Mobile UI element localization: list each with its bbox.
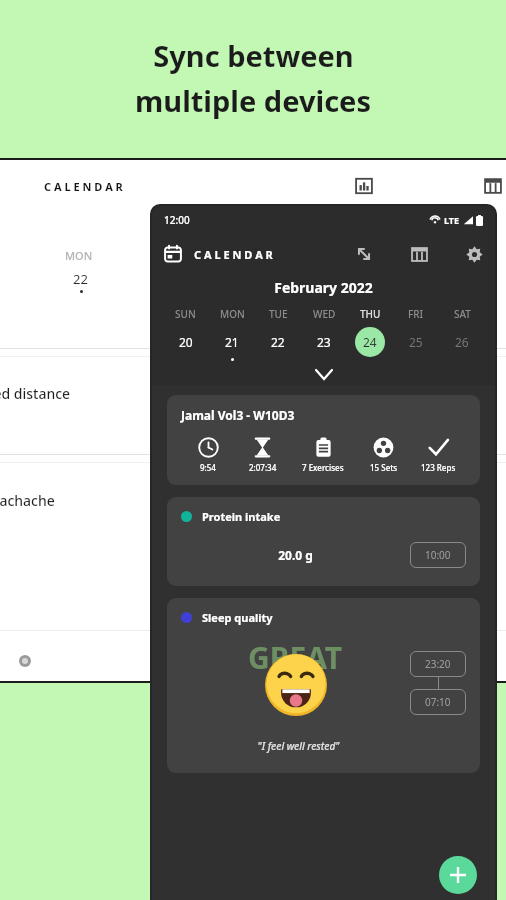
staticText: ...achache (0, 491, 55, 510)
staticText: 23 (317, 334, 331, 350)
button[interactable]: Statistics (355, 177, 373, 195)
staticText: SUN (175, 307, 196, 321)
staticText: 21 (225, 334, 239, 350)
staticText: 7 Exercises (302, 462, 344, 473)
button[interactable]: 123 Reps (411, 437, 466, 473)
staticText: 9:54 (200, 462, 216, 473)
button[interactable]: TUE (255, 307, 301, 363)
staticText: 20.0 g (181, 547, 410, 563)
button[interactable]: WED (301, 307, 347, 363)
staticText: MON (220, 307, 245, 321)
button[interactable]: THU (347, 307, 393, 363)
staticText: ...ed distance (0, 384, 71, 403)
staticText: THU (360, 307, 381, 321)
button[interactable]: 9:54 (181, 437, 235, 473)
staticText: February 2022 (152, 278, 495, 297)
staticText: 12:00 (164, 213, 190, 227)
staticText: 24 (363, 334, 377, 350)
staticText: 20 (179, 334, 193, 350)
button[interactable]: 2:07:34 (235, 437, 290, 473)
staticText: 26 (455, 334, 469, 350)
button[interactable]: SAT (439, 307, 485, 363)
staticText: SAT (454, 307, 471, 321)
staticText: C A L E N D A R (44, 179, 123, 194)
button[interactable]: Protein intake (167, 497, 480, 586)
button[interactable]: Calendar (164, 245, 182, 263)
staticText: 23:20 (425, 657, 451, 671)
button[interactable]: 7 Exercises (290, 437, 356, 473)
button[interactable]: Sleep quality (167, 598, 480, 773)
staticText: 22 (271, 334, 285, 350)
button[interactable]: Add entry (439, 856, 477, 894)
staticText: 10:00 (425, 548, 451, 562)
staticText: 2:07:34 (249, 462, 277, 473)
button[interactable]: Settings (466, 246, 483, 263)
button[interactable]: 07:10 (410, 689, 466, 715)
staticText: 07:10 (425, 695, 451, 709)
staticText: MON (65, 248, 93, 263)
staticText: WED (313, 307, 336, 321)
staticText: 123 Reps (421, 462, 456, 473)
staticText: "I feel well rested" (181, 739, 416, 753)
staticText: GREAT (248, 637, 343, 678)
staticText: LTE (444, 214, 460, 226)
staticText: 22 (73, 270, 88, 288)
button[interactable]: 23:20 (410, 651, 466, 677)
button[interactable]: 15 Sets (356, 437, 411, 473)
staticText: FRI (408, 307, 424, 321)
staticText: Sleep quality (202, 610, 273, 625)
button[interactable]: Table (484, 177, 502, 195)
staticText: Sync between (153, 36, 354, 75)
button[interactable]: 10:00 (410, 542, 466, 568)
button[interactable]: Sync (355, 245, 373, 263)
button[interactable]: FRI (393, 307, 439, 363)
staticText: TUE (269, 307, 288, 321)
staticText: Jamal Vol3 - W10D3 (181, 407, 295, 423)
staticText: Protein intake (202, 509, 281, 524)
staticText: multiple devices (135, 81, 371, 120)
button[interactable]: Expand calendar (152, 363, 495, 385)
button[interactable]: C A L E N D A R (194, 247, 273, 262)
staticText: 15 Sets (370, 462, 398, 473)
button[interactable]: Jamal Vol3 - W10D3 (167, 395, 480, 485)
button[interactable]: SUN (162, 307, 209, 363)
button[interactable]: Table (411, 246, 428, 263)
staticText: 25 (409, 334, 423, 350)
button[interactable]: MON (209, 307, 255, 363)
